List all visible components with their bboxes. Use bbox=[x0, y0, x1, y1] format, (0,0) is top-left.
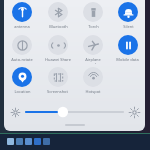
button[interactable]: Screenshot bbox=[47, 66, 68, 96]
button[interactable]: Mobile data bbox=[116, 34, 139, 64]
button[interactable]: App two bbox=[25, 138, 32, 145]
button[interactable]: antenna bbox=[12, 1, 32, 31]
button[interactable]: Airplane mode bbox=[83, 34, 103, 64]
button[interactable]: Hotspot bbox=[83, 66, 103, 96]
staticText: Auto-rotate bbox=[11, 57, 33, 62]
button[interactable]: Brightness bbox=[26, 103, 123, 121]
button[interactable]: Torch bbox=[83, 1, 103, 31]
staticText: Bluetooth bbox=[49, 24, 68, 29]
staticText: antenna bbox=[14, 24, 30, 29]
button[interactable]: Auto-rotate bbox=[11, 34, 33, 64]
button[interactable]: App four bbox=[43, 138, 50, 145]
button[interactable]: Bluetooth bbox=[48, 1, 68, 31]
button[interactable]: Location bbox=[12, 66, 32, 96]
button[interactable]: App three bbox=[34, 138, 41, 145]
staticText: Mobile data bbox=[116, 57, 139, 62]
staticText: Airplane mode bbox=[85, 57, 101, 64]
staticText: Screenshot bbox=[47, 89, 68, 94]
other: Low brightness bbox=[4, 103, 26, 121]
button[interactable]: Silent bbox=[118, 1, 138, 31]
staticText: Torch bbox=[88, 24, 99, 29]
staticText: Huawei Share bbox=[45, 57, 71, 62]
staticText: Silent bbox=[123, 24, 134, 29]
other: High brightness bbox=[123, 103, 145, 121]
button[interactable]: Huawei Share bbox=[45, 34, 71, 64]
staticText: Hotspot bbox=[85, 89, 101, 94]
button[interactable]: App one bbox=[16, 138, 23, 145]
button[interactable]: Cloud bbox=[7, 138, 14, 145]
staticText: Location bbox=[14, 89, 31, 94]
